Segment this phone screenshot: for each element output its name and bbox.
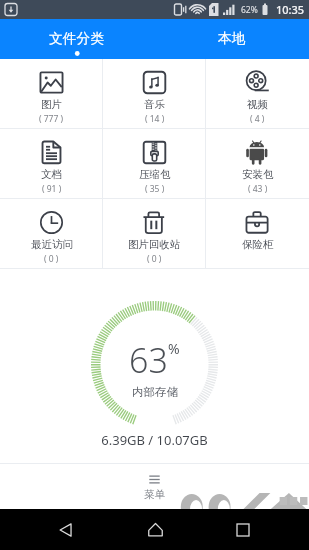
staticText: ( 91 ) bbox=[42, 183, 62, 195]
button[interactable]: Back bbox=[44, 509, 88, 550]
staticText: 62% bbox=[241, 4, 258, 16]
button[interactable]: 压缩包 bbox=[103, 129, 206, 198]
staticText: 内部存储 bbox=[132, 385, 178, 399]
staticText: % bbox=[168, 339, 180, 358]
button[interactable]: 菜单 bbox=[0, 464, 309, 509]
staticText: 本地 bbox=[218, 30, 246, 47]
staticText: 压缩包 bbox=[139, 168, 171, 181]
staticText: 最近访问 bbox=[31, 238, 73, 251]
button[interactable]: 保险柜 bbox=[206, 199, 309, 268]
button[interactable]: 图片回收站 bbox=[103, 199, 206, 268]
staticText: ( 14 ) bbox=[145, 113, 165, 125]
button[interactable]: 图片 bbox=[0, 59, 103, 128]
button[interactable]: 视频 bbox=[206, 59, 309, 128]
staticText: 文件分类 bbox=[49, 30, 105, 47]
button[interactable]: 文档 bbox=[0, 129, 103, 198]
button[interactable]: 最近访问 bbox=[0, 199, 103, 268]
staticText: ( 35 ) bbox=[145, 183, 165, 195]
staticText: 图片回收站 bbox=[128, 238, 181, 251]
staticText: ( 43 ) bbox=[248, 183, 268, 195]
staticText: 10:35 bbox=[276, 2, 305, 17]
staticText: 保险柜 bbox=[242, 238, 274, 251]
staticText: ( 0 ) bbox=[44, 253, 59, 265]
staticText: 音乐 bbox=[144, 98, 165, 111]
button[interactable]: 文件分类 bbox=[0, 19, 154, 59]
staticText: 63 bbox=[129, 337, 168, 383]
staticText: 视频 bbox=[247, 98, 268, 111]
staticText: 文档 bbox=[41, 168, 62, 181]
staticText: ( 4 ) bbox=[250, 113, 265, 125]
staticText: 6.39GB / 10.07GB bbox=[0, 431, 309, 449]
button[interactable]: Recents bbox=[221, 509, 265, 550]
staticText: 图片 bbox=[41, 98, 62, 111]
button[interactable]: 安装包 bbox=[206, 129, 309, 198]
button[interactable]: 音乐 bbox=[103, 59, 206, 128]
staticText: ( 777 ) bbox=[39, 113, 64, 125]
button[interactable]: Home bbox=[133, 509, 177, 550]
staticText: ( 0 ) bbox=[147, 253, 162, 265]
staticText: 安装包 bbox=[242, 168, 274, 181]
button[interactable]: 本地 bbox=[154, 19, 309, 59]
staticText: 菜单 bbox=[144, 488, 165, 501]
